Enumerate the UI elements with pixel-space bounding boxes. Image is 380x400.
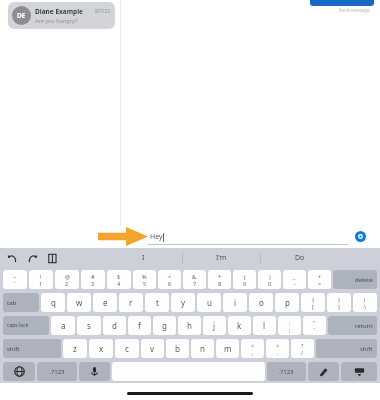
staticText: )	[269, 273, 271, 280]
button[interactable]: _	[283, 270, 306, 289]
button[interactable]: .?123	[267, 362, 306, 381]
staticText: Send message	[339, 7, 370, 13]
button[interactable]: Redo	[27, 253, 38, 264]
button[interactable]: v	[141, 339, 164, 358]
staticText: z	[73, 343, 77, 354]
button[interactable]: b	[166, 339, 189, 358]
button[interactable]: .?123	[37, 362, 77, 381]
staticText: 9	[243, 280, 247, 287]
button[interactable]: Undo	[7, 253, 18, 264]
button[interactable]: a	[51, 316, 75, 335]
button[interactable]: Do	[261, 248, 338, 268]
staticText: :	[289, 319, 291, 326]
button[interactable]: Send	[355, 231, 366, 242]
button[interactable]: g	[153, 316, 176, 335]
button[interactable]: c	[115, 339, 139, 358]
staticText: "	[313, 319, 316, 326]
staticText: 0	[268, 280, 272, 287]
staticText: 2	[65, 280, 69, 287]
staticText: m	[224, 343, 232, 354]
staticText: tab	[7, 299, 17, 307]
staticText: '	[314, 326, 316, 333]
button[interactable]: &	[183, 270, 206, 289]
button[interactable]: @	[55, 270, 79, 289]
button[interactable]: u	[197, 293, 221, 312]
button[interactable]: }	[327, 293, 351, 312]
button[interactable]: >	[266, 339, 289, 358]
button[interactable]: m	[216, 339, 239, 358]
staticText: x	[99, 343, 104, 354]
button[interactable]: i	[223, 293, 247, 312]
button[interactable]: Hey	[148, 229, 348, 244]
button[interactable]: x	[89, 339, 113, 358]
button[interactable]: *	[208, 270, 231, 289]
button[interactable]: I	[105, 248, 182, 268]
button[interactable]: %	[133, 270, 156, 289]
staticText: ,	[252, 349, 254, 356]
staticText: 3	[91, 280, 95, 287]
button[interactable]: delete	[333, 270, 377, 289]
button[interactable]: s	[77, 316, 101, 335]
staticText: k	[237, 320, 242, 331]
button[interactable]: y	[171, 293, 195, 312]
button[interactable]: t	[145, 293, 169, 312]
staticText: u	[207, 297, 212, 308]
button[interactable]: ~	[3, 270, 27, 289]
button[interactable]: Switch language	[3, 362, 35, 381]
staticText: n	[200, 343, 205, 354]
button[interactable]: Dictation	[79, 362, 110, 381]
button[interactable]: :	[278, 316, 301, 335]
button[interactable]: !	[29, 270, 53, 289]
button[interactable]: q	[41, 293, 65, 312]
button[interactable]: f	[128, 316, 151, 335]
button[interactable]: tab	[3, 293, 39, 312]
button[interactable]: z	[63, 339, 87, 358]
button[interactable]: n	[191, 339, 214, 358]
button[interactable]: ^	[158, 270, 181, 289]
button[interactable]: Paste	[47, 253, 58, 264]
button[interactable]: w	[67, 293, 91, 312]
button[interactable]: r	[119, 293, 143, 312]
button[interactable]: p	[275, 293, 299, 312]
button[interactable]: Hide keyboard	[341, 362, 377, 381]
button[interactable]: )	[258, 270, 281, 289]
button[interactable]: "	[303, 316, 326, 335]
button[interactable]: |	[353, 293, 377, 312]
button[interactable]: h	[178, 316, 201, 335]
button[interactable]: shift	[316, 339, 377, 358]
button[interactable]: caps lock	[3, 316, 49, 335]
button[interactable]: DE	[8, 2, 115, 29]
button[interactable]	[310, 0, 374, 6]
button[interactable]: shift	[3, 339, 61, 358]
staticText: d	[112, 320, 117, 331]
staticText: i	[234, 297, 237, 308]
button[interactable]: d	[103, 316, 126, 335]
button[interactable]: l	[253, 316, 276, 335]
button[interactable]: return	[328, 316, 377, 335]
staticText: f	[138, 320, 141, 331]
button[interactable]: +	[308, 270, 331, 289]
button[interactable]: (	[233, 270, 256, 289]
button[interactable]: <	[241, 339, 264, 358]
button[interactable]: e	[93, 293, 117, 312]
button[interactable]: $	[107, 270, 131, 289]
button[interactable]: {	[301, 293, 325, 312]
button[interactable]: j	[203, 316, 226, 335]
button[interactable]: I'm	[183, 248, 260, 268]
button[interactable]: o	[249, 293, 273, 312]
staticText: 4	[117, 280, 121, 287]
staticText: {	[312, 296, 315, 303]
staticText: ]	[338, 303, 340, 310]
button[interactable]: #	[81, 270, 105, 289]
staticText: |	[363, 296, 367, 303]
button[interactable]: Markup	[308, 362, 339, 381]
staticText: $	[117, 273, 121, 280]
staticText: ^	[168, 273, 172, 280]
staticText: -	[294, 280, 296, 287]
button[interactable]: k	[228, 316, 251, 335]
staticText: _	[293, 273, 296, 280]
staticText: g	[162, 320, 167, 331]
staticText: 8	[218, 280, 222, 287]
button[interactable]: ?	[291, 339, 314, 358]
